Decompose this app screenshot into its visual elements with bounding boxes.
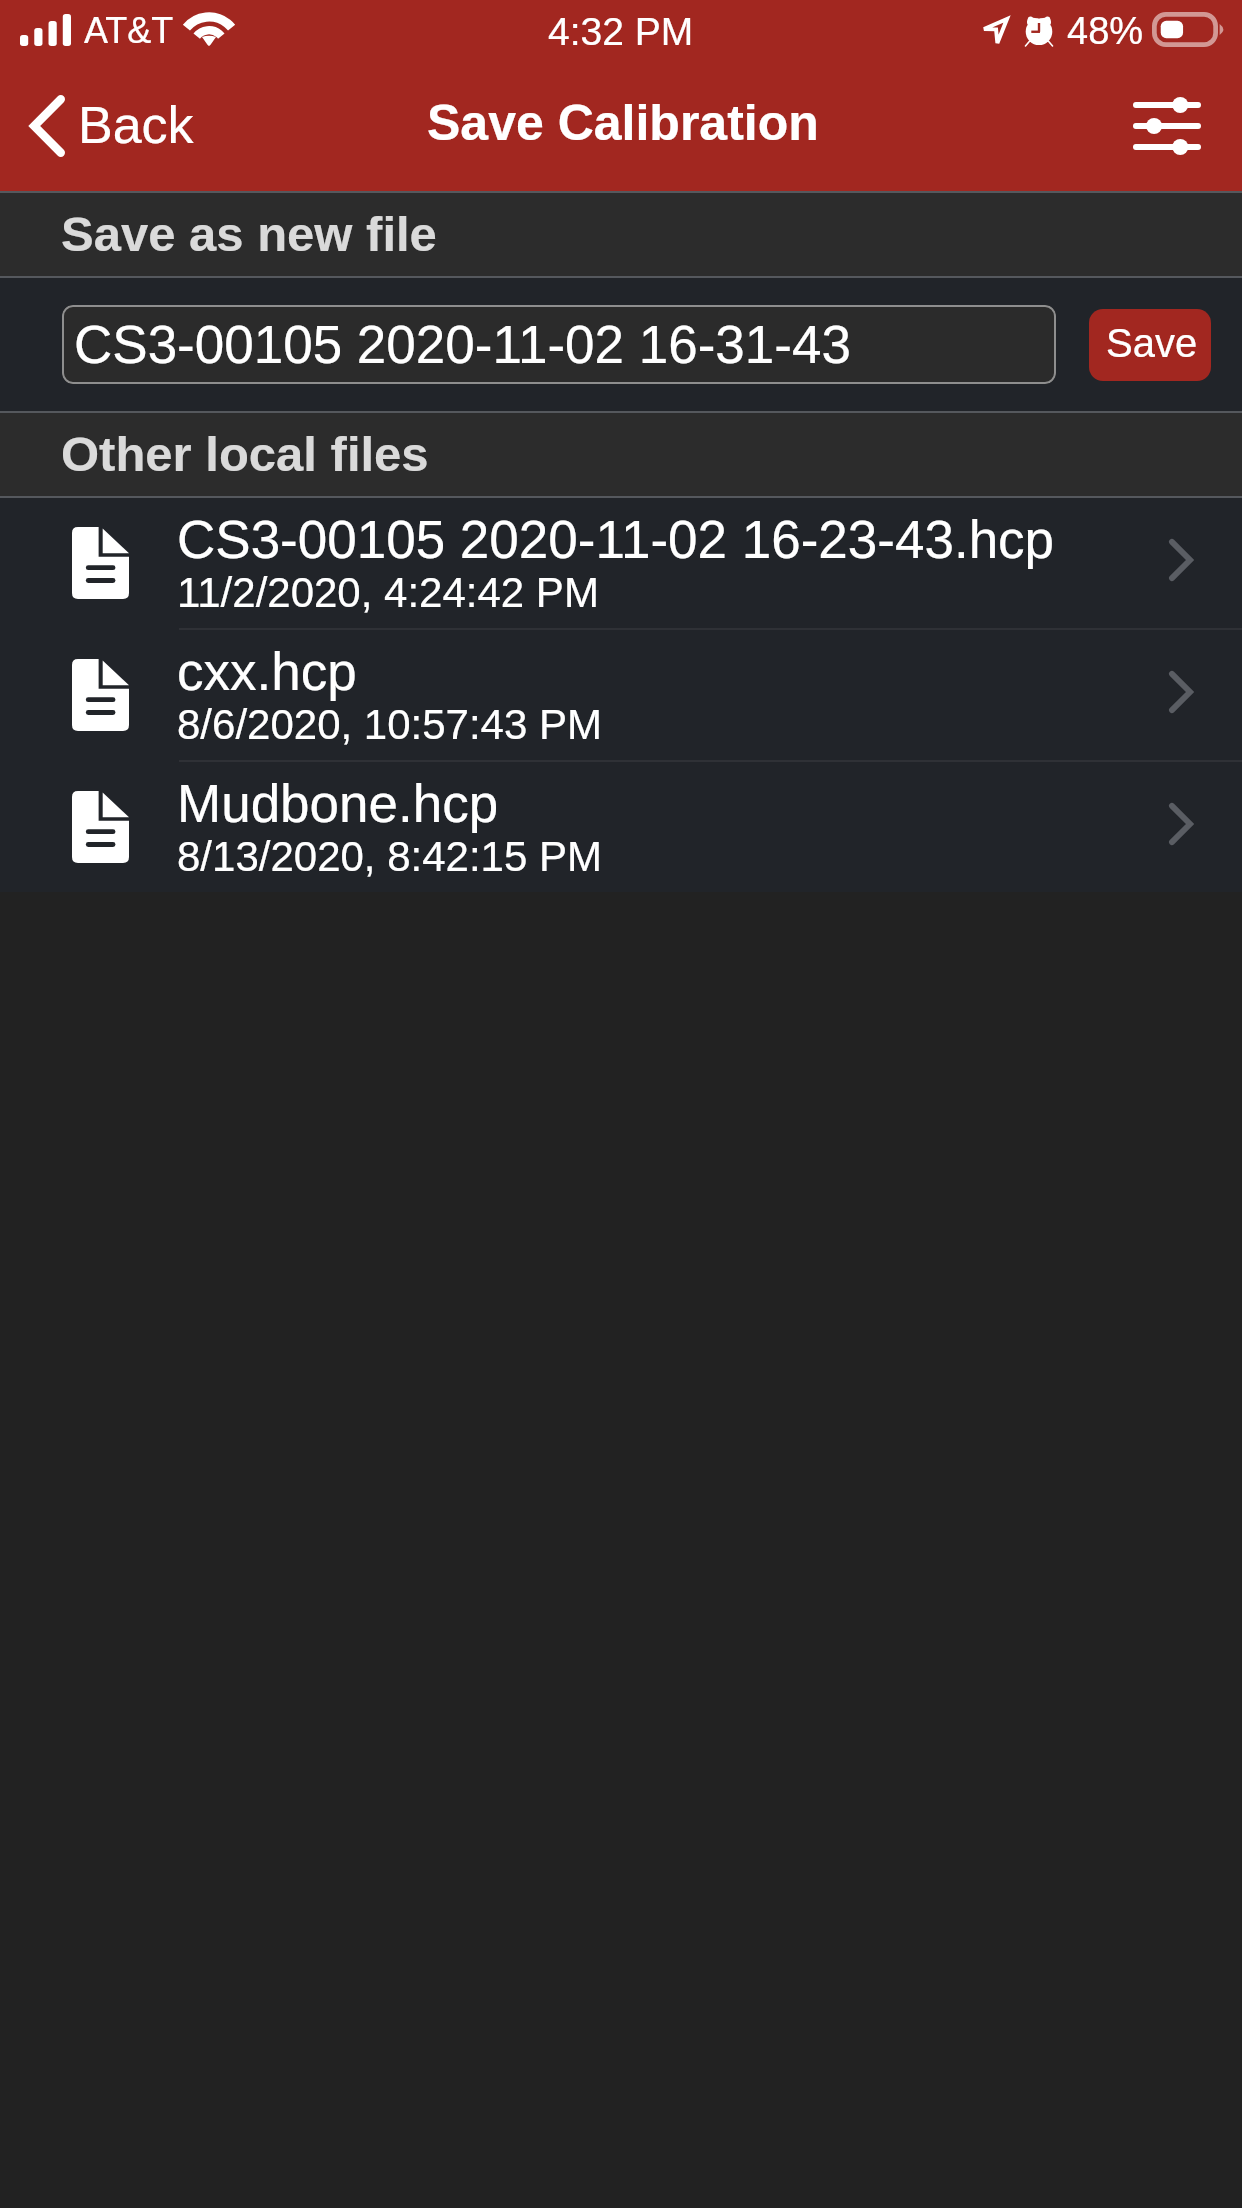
staticText: cxx.hcp [177,642,357,701]
staticText: Save as new file [61,207,437,262]
staticText: Save Calibration [427,95,819,151]
button[interactable]: Settings [1103,80,1242,178]
button[interactable]: Mudbone.hcp [0,762,1242,892]
staticText: CS3-00105 2020-11-02 16-31-43 [74,315,851,374]
button[interactable]: CS3-00105 2020-11-02 16-23-43.hcp [0,498,1242,628]
button[interactable]: Save [1089,309,1211,381]
staticText: Mudbone.hcp [177,774,499,833]
staticText: CS3-00105 2020-11-02 16-23-43.hcp [177,510,1055,569]
staticText: 48% [1067,10,1144,52]
staticText: 8/6/2020, 10:57:43 PM [177,701,602,748]
staticText: 4:32 PM [548,10,694,54]
button[interactable]: cxx.hcp [0,630,1242,760]
staticText: AT&T [84,10,174,50]
button[interactable]: CS3-00105 2020-11-02 16-31-43 [62,305,1056,384]
staticText: 11/2/2020, 4:24:42 PM [177,569,599,616]
staticText: Save [1106,321,1198,366]
staticText: Back [78,96,194,154]
staticText: 8/13/2020, 8:42:15 PM [177,833,602,880]
staticText: Other local files [61,427,429,482]
button[interactable]: Back [0,84,217,174]
